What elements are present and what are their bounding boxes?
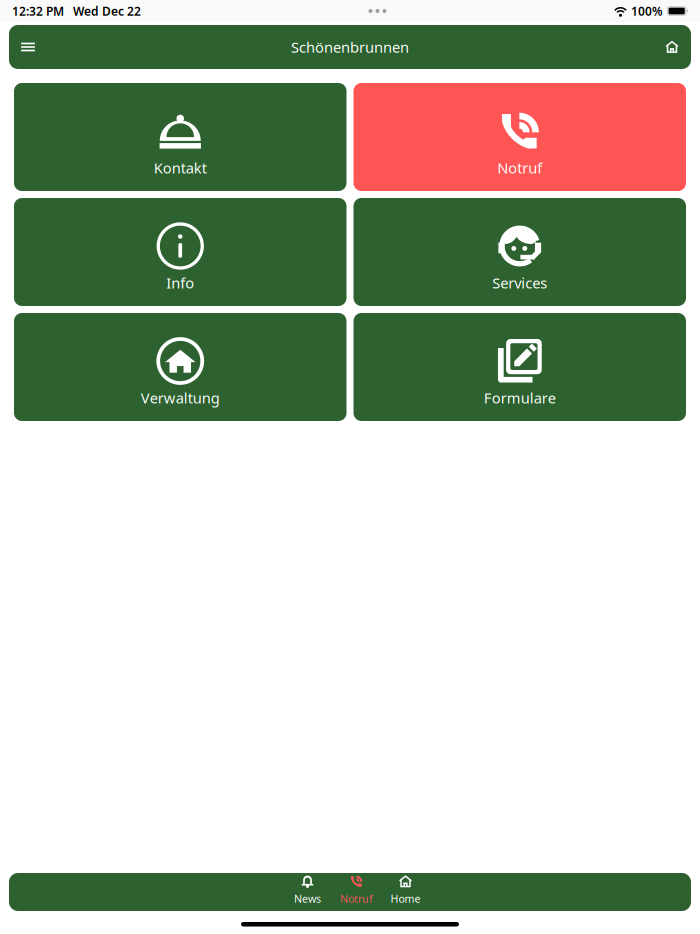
button[interactable]: Notruf xyxy=(353,83,686,191)
staticText: Info xyxy=(166,273,194,292)
staticText: Verwaltung xyxy=(141,388,220,407)
button[interactable]: Home xyxy=(653,25,691,69)
button[interactable]: Kontakt xyxy=(14,83,346,191)
button[interactable]: Formulare xyxy=(353,313,686,421)
staticText: Notruf xyxy=(340,891,373,906)
staticText: Wed Dec 22 xyxy=(73,3,141,19)
button[interactable]: Notruf xyxy=(332,873,381,911)
staticText: Home xyxy=(390,891,420,906)
staticText: Schönenbrunnen xyxy=(291,37,409,57)
staticText: Formulare xyxy=(484,388,556,407)
staticText: 12:32 PM xyxy=(12,3,64,19)
staticText: Services xyxy=(492,273,547,292)
button[interactable]: Verwaltung xyxy=(14,313,346,421)
button[interactable]: Info xyxy=(14,198,346,306)
staticText: News xyxy=(294,891,321,906)
button[interactable]: News xyxy=(283,873,332,911)
staticText: Notruf xyxy=(497,158,542,177)
button[interactable]: Menu xyxy=(9,25,47,69)
button[interactable]: Services xyxy=(353,198,686,306)
staticText: Kontakt xyxy=(154,158,207,177)
staticText: 100% xyxy=(631,3,663,19)
button[interactable]: Home xyxy=(381,873,430,911)
